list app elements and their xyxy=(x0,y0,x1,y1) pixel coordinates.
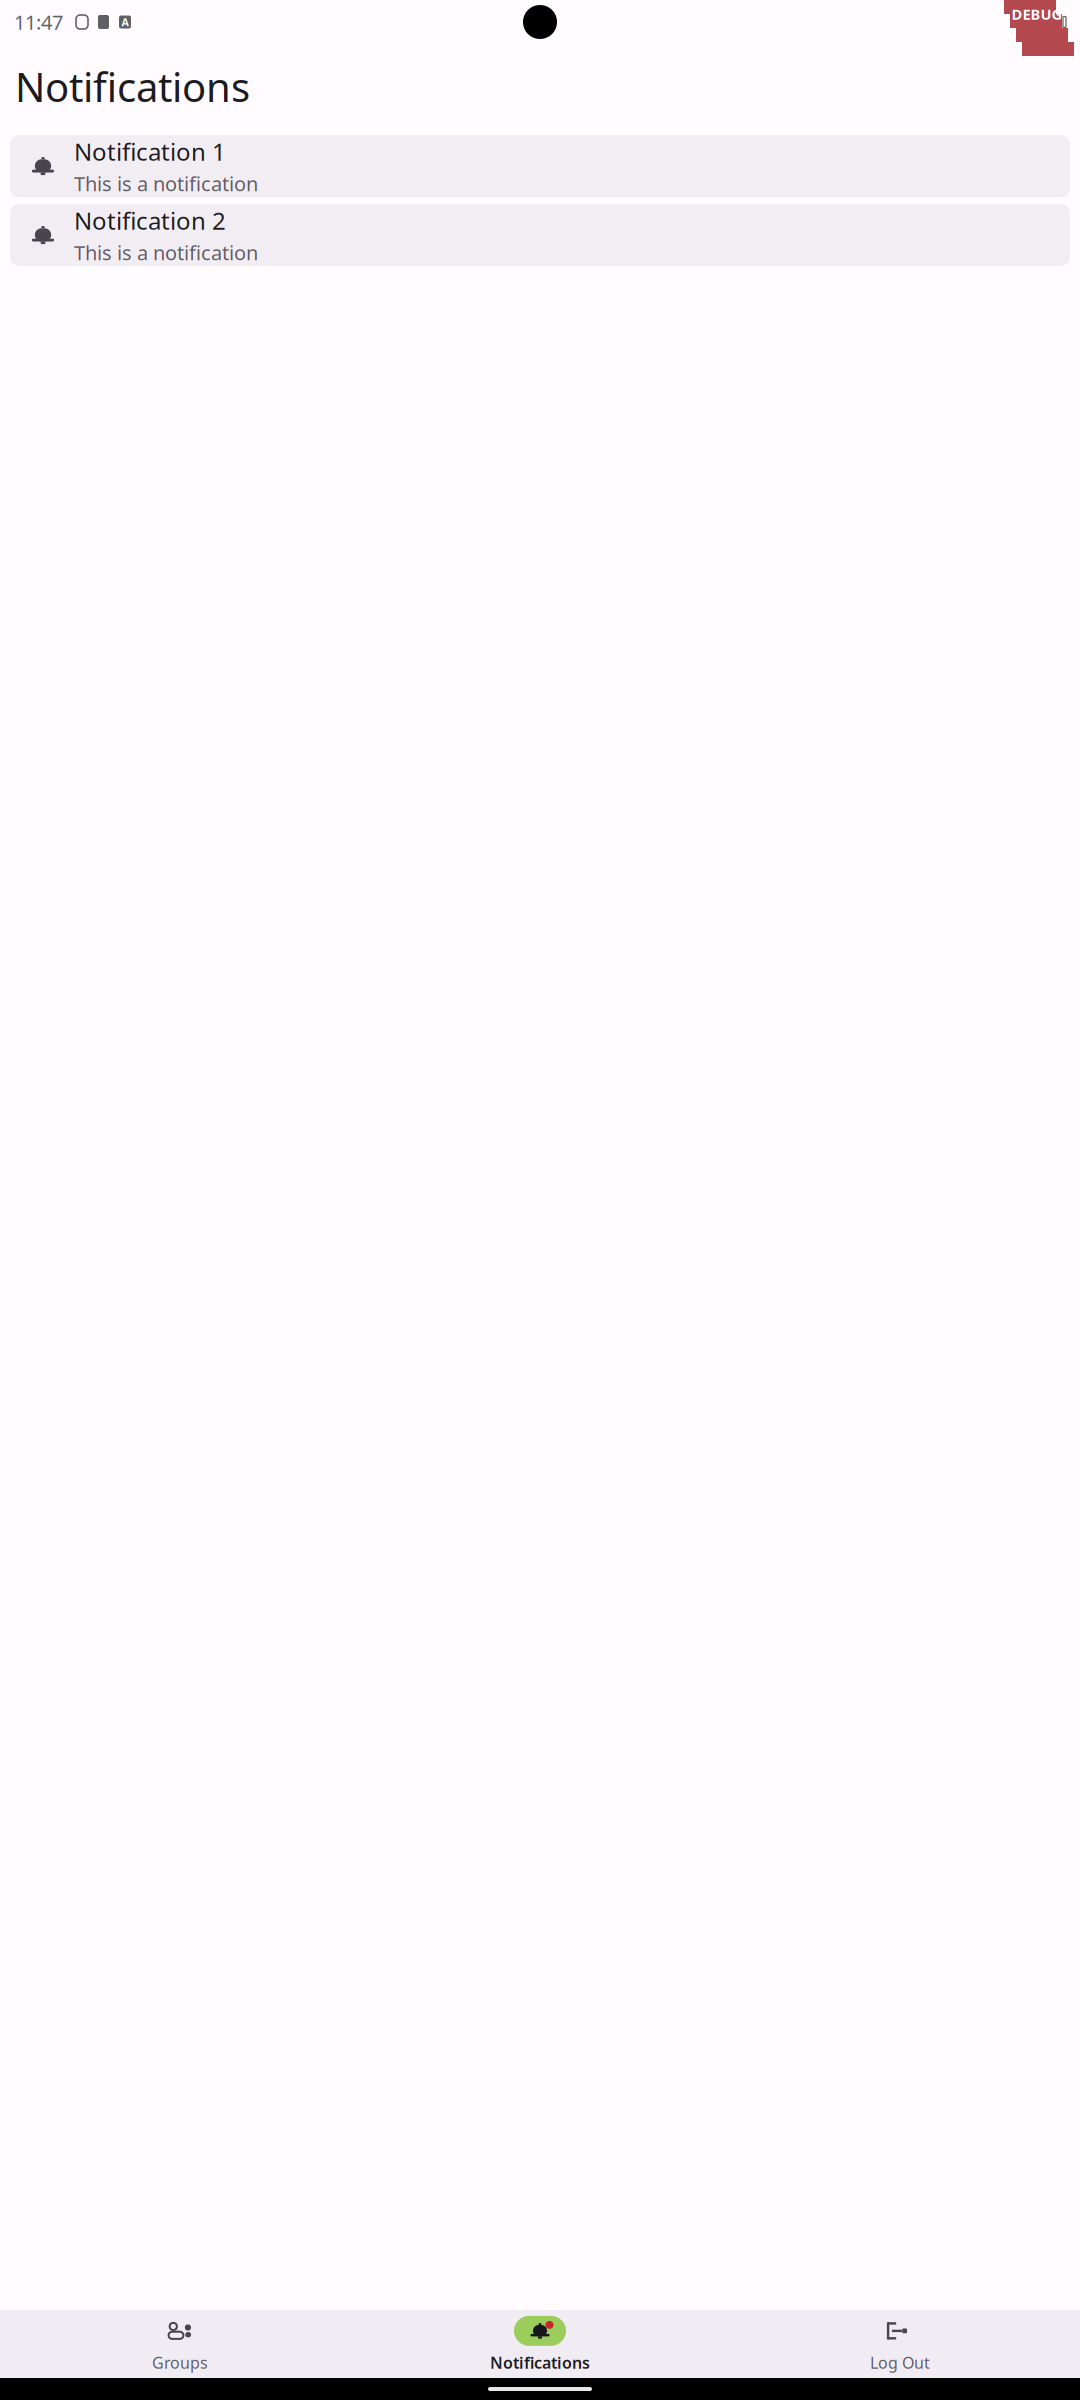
staticText: A xyxy=(121,15,128,29)
staticText: This is a notification xyxy=(74,170,258,197)
staticText: Notifications xyxy=(15,60,250,113)
button[interactable]: Notifications xyxy=(360,2305,720,2383)
staticText: Notifications xyxy=(490,2352,590,2373)
staticText: Log Out xyxy=(870,2352,930,2373)
button[interactable]: Log Out xyxy=(720,2305,1080,2383)
button[interactable]: Groups xyxy=(0,2305,360,2383)
staticText: Notification 2 xyxy=(74,204,226,236)
button[interactable]: Notification 1 xyxy=(10,135,1070,197)
staticText: Groups xyxy=(152,2352,208,2373)
button[interactable]: Notification 2 xyxy=(10,204,1070,266)
staticText: DEBUG xyxy=(1011,4,1062,24)
staticText: This is a notification xyxy=(74,239,258,266)
staticText: 11:47 xyxy=(14,9,63,35)
staticText: Notification 1 xyxy=(74,135,226,167)
